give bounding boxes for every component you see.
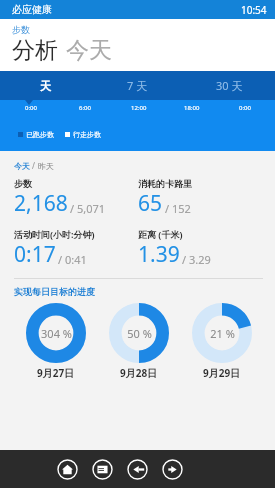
button[interactable]: Back [127, 459, 148, 480]
staticText: 分析 [12, 36, 58, 65]
staticText: / 0:41 [58, 252, 87, 267]
staticText: 30 天 [216, 78, 243, 93]
staticText: 必应健康 [12, 3, 52, 16]
staticText: 0:17 [14, 240, 56, 269]
button[interactable]: Forward [162, 459, 183, 480]
button[interactable]: 昨天 [38, 161, 54, 171]
staticText: 0:00 [25, 104, 37, 112]
staticText: 消耗的卡路里 [138, 178, 192, 189]
button[interactable]: 7 天 [91, 71, 183, 100]
button[interactable]: 消耗的卡路里 [138, 178, 263, 218]
button[interactable]: 距离 (千米) [138, 228, 263, 269]
staticText: 步数 [12, 24, 30, 35]
staticText: 9月28日 [120, 366, 158, 380]
staticText: 已跑步数 [26, 130, 54, 139]
staticText: 21 % [210, 326, 235, 341]
staticText: 304 % [41, 326, 72, 341]
button[interactable]: 步数 [14, 178, 138, 218]
button[interactable]: 天 [0, 71, 91, 100]
staticText: 6:00 [79, 104, 91, 112]
staticText: 距离 (千米) [138, 228, 183, 240]
staticText: 活动时间(小时:分钟) [14, 228, 95, 240]
staticText: 1.39 [138, 240, 180, 269]
staticText: / 3.29 [182, 252, 211, 267]
button[interactable]: Recent apps [92, 459, 113, 480]
staticText: / 152 [165, 201, 191, 216]
staticText: 行走步数 [73, 130, 101, 139]
staticText: 18:00 [184, 104, 200, 112]
staticText: 9月29日 [203, 366, 241, 380]
staticText: 7 天 [127, 78, 148, 93]
staticText: 2,168 [14, 189, 68, 218]
button[interactable]: 活动时间(小时:分钟) [14, 228, 138, 269]
staticText: 0:00 [239, 104, 251, 112]
staticText: 实现每日目标的进度 [14, 286, 95, 297]
button[interactable]: 304 % [14, 303, 97, 380]
staticText: / [30, 160, 38, 171]
button[interactable]: Home [57, 459, 78, 480]
staticText: 天 [40, 79, 51, 93]
staticText: 50 % [127, 326, 152, 341]
staticText: / 5,071 [70, 201, 106, 216]
staticText: 步数 [14, 178, 32, 189]
button[interactable]: 50 % [97, 303, 180, 380]
staticText: 65 [138, 189, 163, 218]
button[interactable]: 21 % [180, 303, 263, 380]
button[interactable]: 今天 [66, 36, 112, 65]
button[interactable]: 今天 [14, 161, 30, 171]
button[interactable]: 30 天 [183, 71, 275, 100]
staticText: 12:00 [131, 104, 147, 112]
staticText: 10:54 [241, 3, 267, 17]
staticText: 9月27日 [37, 366, 75, 380]
